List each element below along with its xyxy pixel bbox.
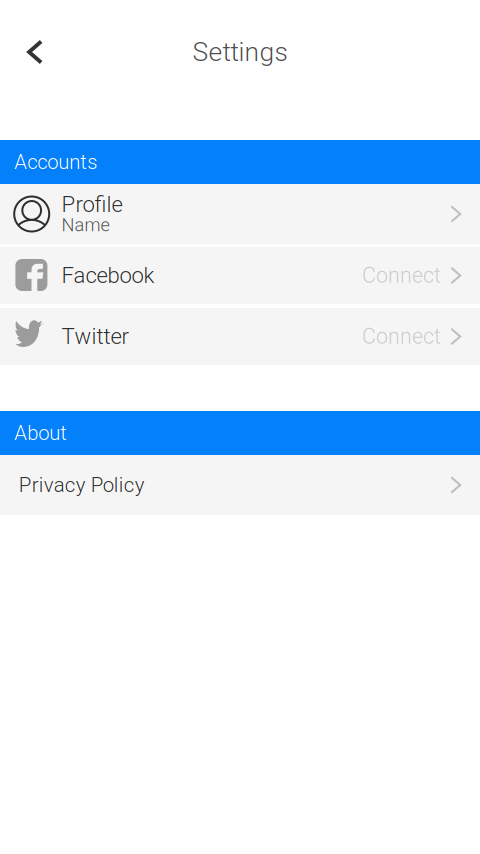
staticText: About	[14, 421, 67, 445]
staticText: Settings	[192, 36, 287, 67]
staticText: Connect	[362, 324, 441, 349]
staticText: Profile	[61, 191, 122, 217]
button[interactable]: Twitter	[0, 308, 480, 365]
staticText: Facebook	[61, 262, 154, 288]
button[interactable]: Profile	[0, 184, 480, 244]
staticText: Privacy Policy	[19, 473, 145, 497]
button[interactable]: Privacy Policy	[0, 455, 480, 515]
staticText: Name	[61, 214, 109, 235]
staticText: Connect	[362, 263, 441, 288]
staticText: Twitter	[61, 323, 128, 349]
button[interactable]: Back	[0, 21, 59, 83]
staticText: Accounts	[14, 150, 97, 174]
button[interactable]: Facebook	[0, 247, 480, 304]
